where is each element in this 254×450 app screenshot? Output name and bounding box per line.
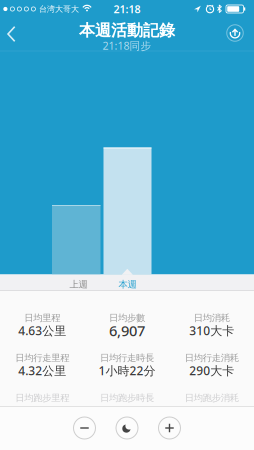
staticText: 日均跑步里程 [15,392,69,404]
button[interactable] [226,24,243,41]
staticText: 上週 [69,279,87,290]
staticText: 290大卡 [189,362,234,378]
button[interactable]: 本週 [107,276,147,292]
staticText: 日均跑步消耗 [185,392,239,404]
button[interactable] [73,417,95,439]
staticText: 日均步數 [109,312,145,324]
staticText: 台湾大哥大 [39,4,79,14]
staticText: 21:18同步 [102,38,151,53]
staticText: 日均行走消耗 [185,352,239,364]
button[interactable] [158,417,180,439]
button[interactable] [6,26,16,43]
staticText: 日均行走時長 [100,352,154,364]
staticText: 日均里程 [24,312,60,324]
staticText: 1小時22分 [98,362,155,378]
button[interactable] [52,205,100,274]
staticText: 本週活動記錄 [79,21,175,40]
staticText: 本週 [118,279,136,290]
staticText: 310大卡 [189,322,234,338]
staticText: 日均消耗 [194,312,230,324]
staticText: 4.32公里 [18,362,66,378]
staticText: 日均跑步時長 [100,392,154,404]
staticText: 21:18 [113,2,140,16]
button[interactable]: 上週 [58,276,98,292]
staticText: 4.63公里 [18,322,66,338]
staticText: 6,907 [109,321,145,340]
button[interactable] [116,417,138,439]
button[interactable] [103,147,151,274]
staticText: 日均行走里程 [15,352,69,364]
